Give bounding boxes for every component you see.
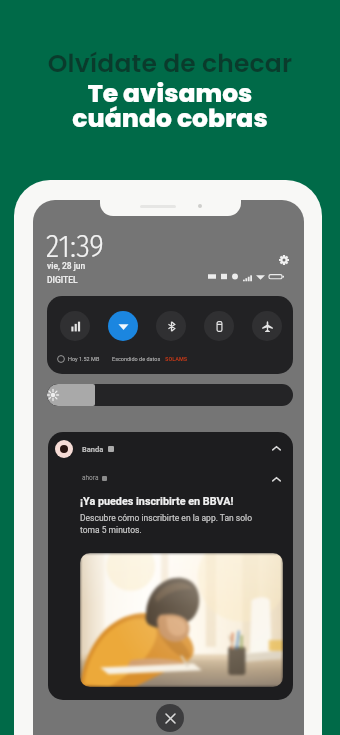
button[interactable]: Ajustes [277,253,291,267]
staticText: Te avisamos cuándo cobras [0,76,340,136]
staticText: DIGITEL [47,275,78,285]
staticText: SOLAMS [165,356,188,362]
button[interactable]: Contraer [270,473,283,486]
button[interactable]: Banda [55,440,114,458]
button[interactable]: wifi [108,311,138,341]
button[interactable]: flash [204,311,234,341]
staticText: Olvídate de checar [0,46,340,81]
button[interactable]: Contraer [270,442,283,455]
button[interactable]: Brillo [47,384,293,406]
button[interactable]: bluetooth [156,311,186,341]
staticText: Escondido de datos [112,356,161,362]
staticText: 21:39 [46,228,104,265]
staticText: ahora [82,474,99,482]
button[interactable]: Cerrar notificaciones [156,704,184,732]
button[interactable]: airplane [252,311,282,341]
staticText: ¡Ya puedes inscribirte en BBVA! [80,495,234,508]
staticText: Banda [82,445,104,454]
staticText: Hoy 1.52 MB [68,356,100,362]
staticText: Descubre cómo inscribirte en la app. Tan… [80,513,253,535]
staticText: vie, 28 jun [47,261,86,271]
button[interactable]: sound [60,311,90,341]
